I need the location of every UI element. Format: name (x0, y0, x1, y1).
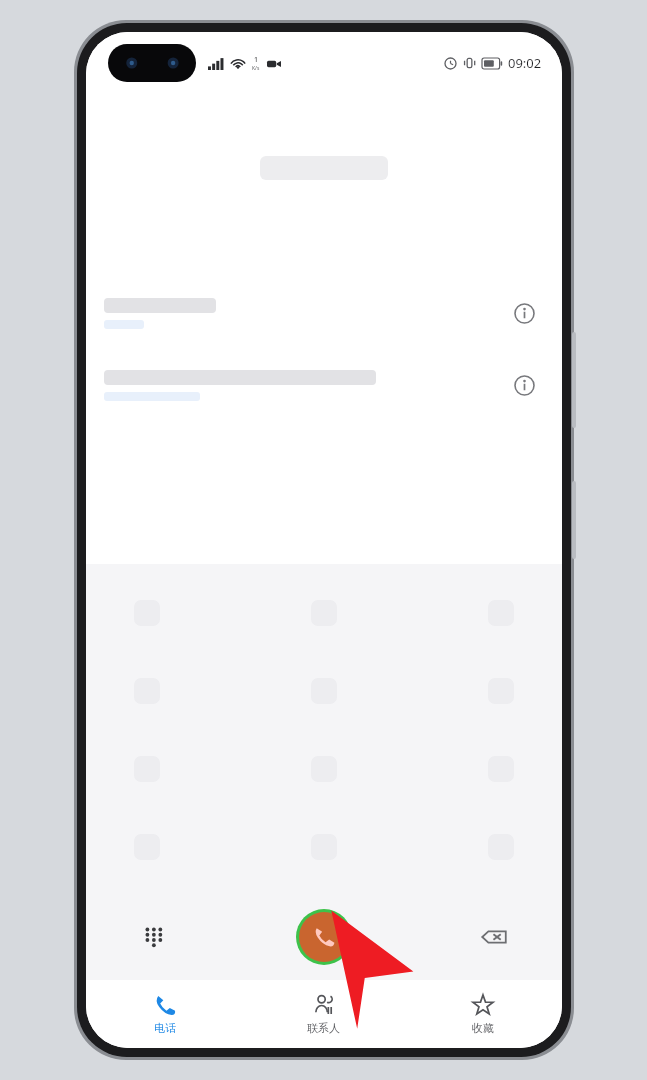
button[interactable]: Call (296, 909, 352, 965)
staticText: 09:02 (508, 54, 542, 72)
staticText: 1 (254, 55, 259, 65)
staticText: 电话 (154, 1021, 176, 1035)
button[interactable]: 收藏 (403, 987, 562, 1041)
button[interactable]: Call details (504, 293, 544, 333)
button[interactable]: 联系人 (244, 987, 403, 1041)
staticText: 联系人 (307, 1021, 340, 1035)
button[interactable]: Call details (504, 365, 544, 405)
button[interactable]: Call details (86, 280, 562, 346)
button[interactable]: Keypad (130, 913, 178, 961)
staticText: 收藏 (472, 1021, 494, 1035)
button[interactable]: Backspace (470, 913, 518, 961)
button[interactable]: 电话 (86, 987, 244, 1041)
staticText: K/s (252, 65, 260, 72)
button[interactable]: Call details (86, 352, 562, 418)
